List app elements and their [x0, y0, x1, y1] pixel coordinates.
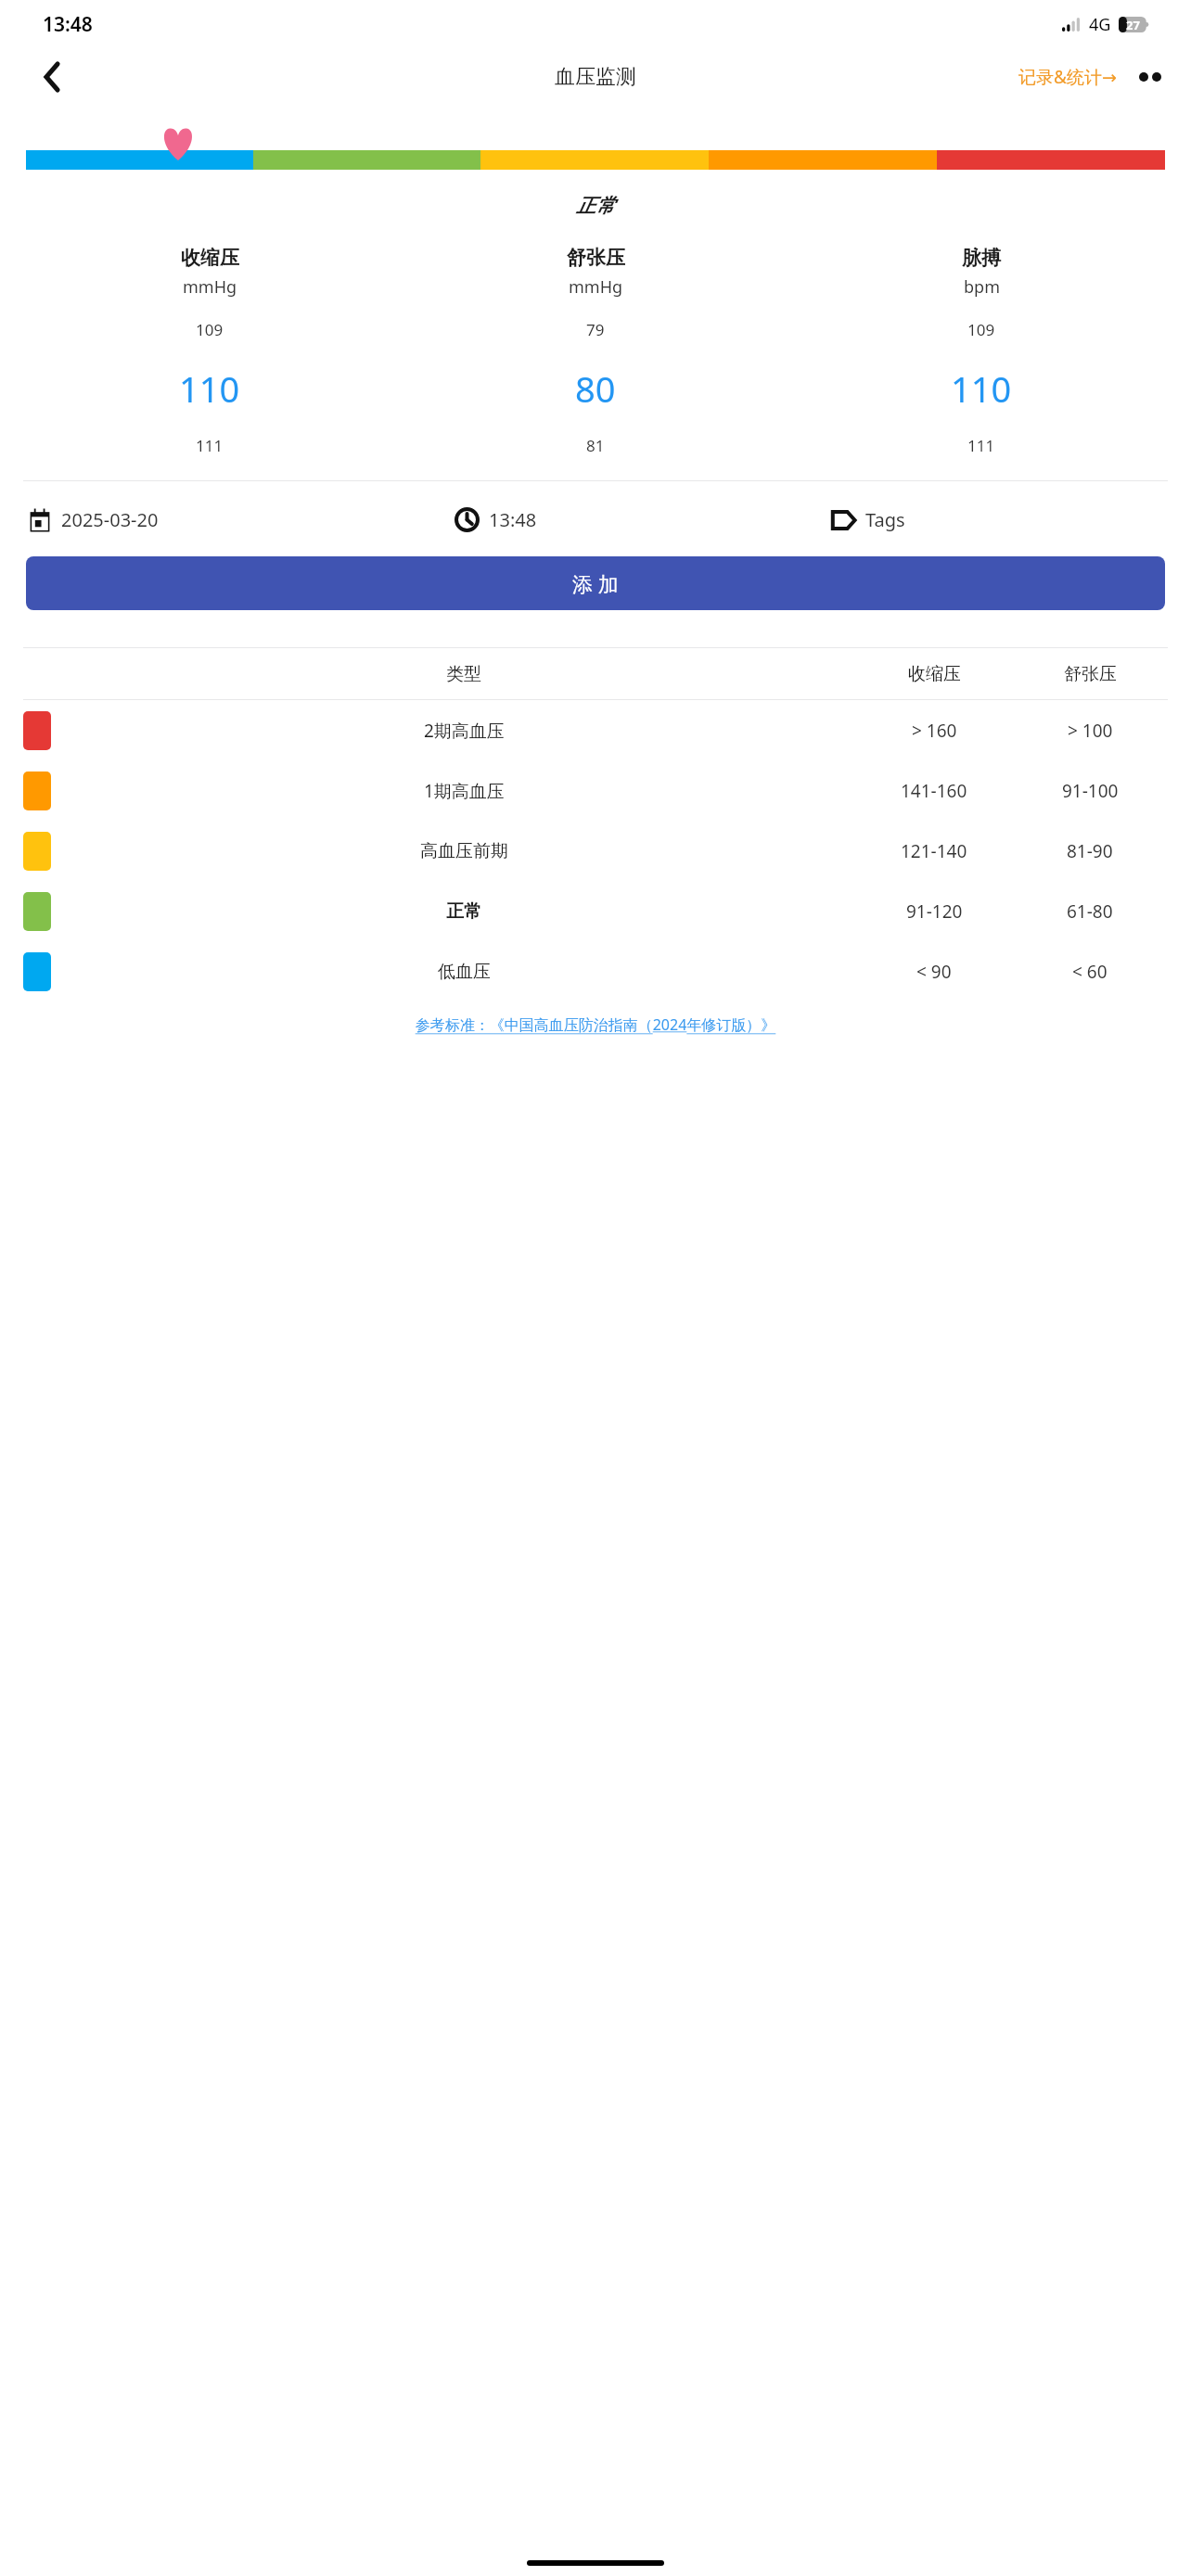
staticText: mmHg — [569, 275, 623, 299]
staticText: 类型 — [446, 663, 481, 685]
staticText: mmHg — [183, 275, 237, 299]
staticText: 110 — [179, 364, 240, 413]
staticText: 61-80 — [1067, 899, 1113, 924]
button[interactable]: Tags — [830, 500, 1163, 540]
staticText: 81-90 — [1067, 839, 1113, 863]
staticText: 舒张压 — [1064, 663, 1117, 685]
staticText: 收缩压 — [181, 246, 239, 270]
staticText: 添 加 — [572, 569, 619, 597]
staticText: < 90 — [916, 960, 952, 984]
staticText: 2025-03-20 — [61, 507, 159, 532]
button[interactable]: 添 加 — [26, 556, 1165, 610]
staticText: 91-120 — [906, 899, 963, 924]
staticText: 正常 — [446, 900, 481, 923]
button[interactable]: 高血压前期 — [23, 821, 1168, 881]
staticText: > 100 — [1068, 719, 1113, 743]
button[interactable]: 正常 — [23, 881, 1168, 941]
staticText: 109 — [196, 319, 224, 340]
staticText: 111 — [967, 435, 995, 456]
staticText: 收缩压 — [908, 663, 961, 685]
staticText: 正常 — [0, 194, 1191, 218]
staticText: 13:48 — [489, 507, 537, 532]
staticText: 27 — [1126, 17, 1140, 32]
staticText: 109 — [967, 319, 995, 340]
staticText: 121-140 — [901, 839, 967, 863]
button[interactable]: Back — [28, 53, 76, 101]
staticText: 4G — [1089, 13, 1111, 36]
staticText: 141-160 — [901, 779, 967, 803]
button[interactable]: 13:48 — [455, 500, 830, 540]
staticText: 舒张压 — [567, 246, 625, 270]
button[interactable]: More options — [1133, 60, 1167, 94]
staticText: 2期高血压 — [424, 719, 505, 743]
staticText: 81 — [586, 435, 605, 456]
staticText: 79 — [586, 319, 605, 340]
button[interactable]: 1期高血压 — [23, 760, 1168, 821]
button[interactable]: 2期高血压 — [23, 700, 1168, 760]
staticText: 1期高血压 — [424, 779, 505, 803]
staticText: 高血压前期 — [420, 840, 508, 862]
staticText: 13:48 — [43, 11, 93, 38]
staticText: 80 — [575, 364, 616, 413]
staticText: 110 — [951, 364, 1012, 413]
staticText: > 160 — [912, 719, 957, 743]
staticText: bpm — [964, 275, 1000, 299]
staticText: 血压监测 — [555, 64, 636, 90]
staticText: 低血压 — [438, 961, 491, 983]
button[interactable]: 2025-03-20 — [28, 500, 455, 540]
staticText: 111 — [196, 435, 224, 456]
staticText: 脉搏 — [962, 246, 1001, 270]
button[interactable]: 低血压 — [23, 941, 1168, 1001]
staticText: Tags — [865, 507, 905, 532]
button[interactable]: 记录&统计→ — [1015, 57, 1121, 96]
staticText: 91-100 — [1062, 779, 1119, 803]
button[interactable]: 参考标准：《中国高血压防治指南（2024年修订版）》 — [0, 1013, 1191, 1037]
staticText: < 60 — [1072, 960, 1108, 984]
